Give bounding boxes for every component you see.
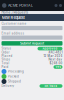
staticText: Next day (48, 58, 62, 61)
staticText: ACME PORTAL (8, 3, 33, 8)
staticText: Status (1, 47, 10, 50)
staticText: Shipped (8, 80, 21, 83)
staticText: New Request (1, 15, 24, 20)
button[interactable]: Submit request (1, 41, 62, 46)
staticText: Ships (1, 58, 9, 61)
staticText: Paid (1, 65, 8, 69)
staticText: On track (44, 84, 57, 88)
staticText: Order (1, 51, 9, 54)
staticText: #AC-4821 (48, 51, 62, 54)
staticText: $248.00 (49, 61, 62, 65)
staticText: Total (1, 61, 9, 65)
staticText: Processing (8, 70, 24, 73)
staticText: Home / Requests (1, 11, 28, 14)
staticText: Packed (8, 75, 19, 78)
staticText: Submit request (20, 41, 44, 45)
staticText: Email address (1, 31, 24, 35)
staticText: Approved (42, 47, 57, 50)
staticText: Yes (55, 65, 60, 69)
staticText: Placed (1, 54, 12, 58)
staticText: Delivery (1, 84, 14, 88)
staticText: Customer name (1, 22, 26, 25)
staticText: 12 Mar 2024 (43, 54, 62, 58)
